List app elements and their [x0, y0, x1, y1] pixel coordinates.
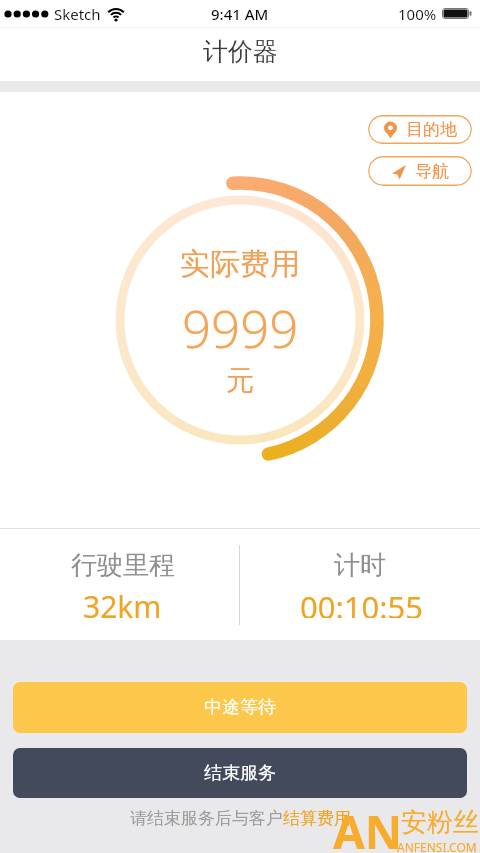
staticText: 9999 — [182, 293, 299, 353]
staticText: 计时 — [334, 549, 386, 581]
button[interactable]: 中途等待 — [13, 682, 467, 733]
button[interactable]: 结束服务 — [13, 748, 467, 798]
staticText: 安粉丝 — [401, 806, 479, 839]
staticText: Sketch — [54, 4, 101, 24]
staticText: 中途等待 — [204, 696, 276, 719]
staticText: 目的地 — [406, 119, 457, 140]
button[interactable]: 目的地 — [368, 115, 472, 144]
staticText: 实际费用 — [180, 245, 300, 283]
staticText: 100% — [398, 4, 437, 24]
staticText: 00:10:55 — [300, 586, 424, 618]
staticText: 32km — [83, 586, 162, 618]
staticText: 元 — [226, 363, 254, 395]
staticText: 行驶里程 — [71, 549, 175, 581]
staticText: ANFENSI.COM — [397, 839, 477, 853]
staticText: 结束服务 — [204, 762, 276, 785]
staticText: 导航 — [415, 161, 449, 182]
staticText: AN — [333, 800, 403, 852]
button[interactable]: 导航 — [368, 156, 472, 186]
staticText: 请结束服务后与客户结算费用 — [130, 808, 351, 829]
staticText: 计价器 — [203, 36, 278, 67]
staticText: 9:41 AM — [211, 4, 269, 24]
